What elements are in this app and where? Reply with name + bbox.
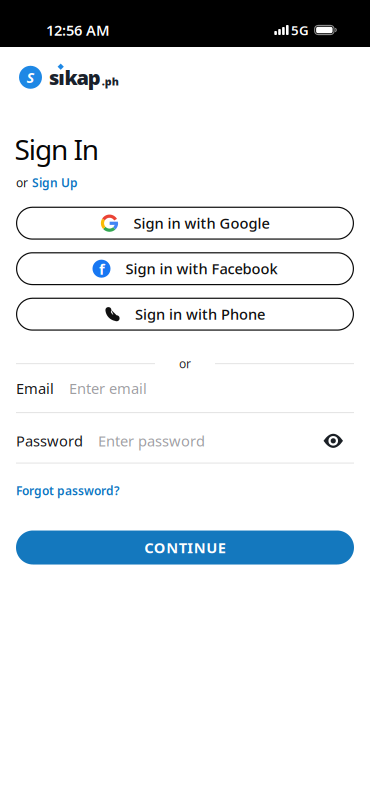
staticText: Enter password	[98, 431, 205, 451]
staticText: or	[16, 175, 28, 191]
button[interactable]: Sign Up	[32, 175, 78, 191]
staticText: CONTINUE	[144, 538, 226, 557]
staticText: .ph	[102, 74, 119, 89]
staticText: sıkap	[49, 64, 101, 91]
staticText: Email	[16, 379, 54, 398]
button[interactable]: Sign in with Google	[16, 207, 354, 240]
staticText: f	[99, 259, 105, 279]
staticText: 5G	[291, 21, 309, 39]
button[interactable]: Forgot password?	[16, 483, 120, 498]
staticText: Sign In	[14, 131, 99, 168]
staticText: Enter email	[69, 379, 147, 398]
staticText: or	[179, 356, 191, 372]
staticText: Sign Up	[32, 175, 78, 191]
staticText: Sign in with Phone	[135, 304, 265, 324]
button[interactable]: CONTINUE	[16, 530, 354, 564]
staticText: Sign in with Google	[133, 213, 269, 233]
staticText: 12:56 AM	[46, 20, 110, 40]
staticText: Sign in with Facebook	[125, 259, 277, 278]
staticText: S	[26, 67, 34, 87]
button[interactable]: Sign in with Phone	[16, 298, 354, 331]
staticText: Forgot password?	[16, 483, 120, 498]
button[interactable]: f	[16, 252, 354, 285]
staticText: Password	[16, 431, 83, 451]
button[interactable]: Show password	[323, 434, 343, 447]
